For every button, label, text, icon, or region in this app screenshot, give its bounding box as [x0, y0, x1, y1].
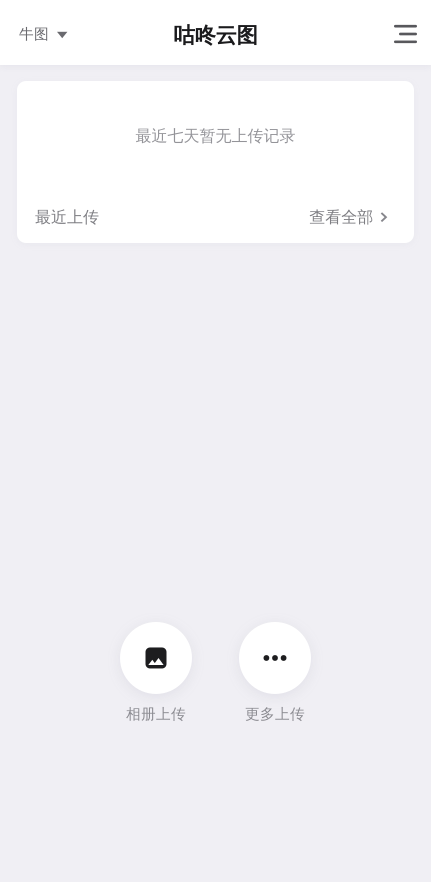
staticText: 牛图 [19, 25, 49, 43]
staticText: 查看全部 [309, 207, 373, 227]
button[interactable]: 查看全部 [309, 207, 387, 227]
staticText: 咕咚云图 [173, 22, 257, 49]
button[interactable]: Menu [380, 10, 431, 54]
staticText: 最近上传 [35, 207, 99, 227]
staticText: 相册上传 [126, 705, 186, 723]
button[interactable]: 牛图 [0, 10, 81, 54]
button[interactable]: 更多上传 [223, 622, 327, 723]
staticText: 最近七天暂无上传记录 [135, 126, 295, 146]
staticText: 更多上传 [245, 705, 305, 723]
button[interactable]: 相册上传 [104, 622, 208, 723]
